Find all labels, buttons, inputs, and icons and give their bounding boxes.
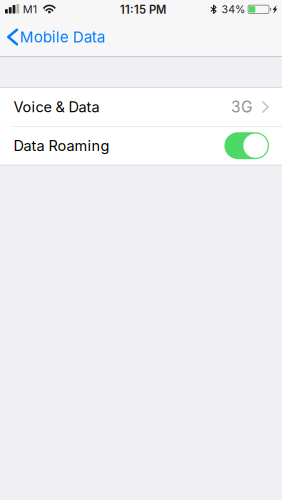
button[interactable]: Voice & Data bbox=[0, 88, 282, 126]
staticText: M1 bbox=[23, 3, 37, 16]
staticText: 34% bbox=[222, 3, 245, 16]
staticText: Data Roaming bbox=[13, 137, 109, 154]
button[interactable]: Data Roaming bbox=[0, 126, 282, 165]
staticText: Mobile Data bbox=[20, 28, 105, 46]
staticText: 11:15 PM bbox=[120, 3, 166, 16]
button[interactable]: Mobile Data bbox=[0, 18, 115, 56]
staticText: 3G bbox=[231, 98, 252, 116]
staticText: Voice & Data bbox=[13, 98, 99, 116]
